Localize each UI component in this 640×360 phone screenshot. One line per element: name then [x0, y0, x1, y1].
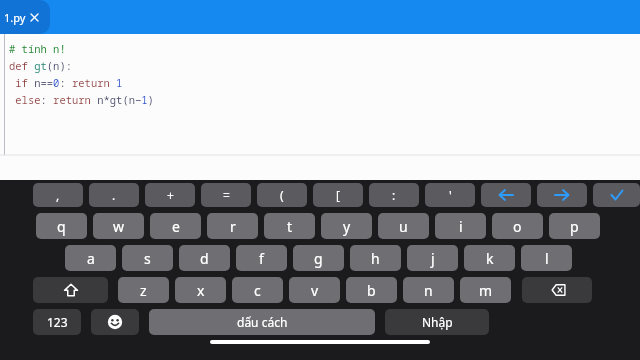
button[interactable]: Nhập	[385, 309, 489, 335]
button[interactable]: [	[313, 183, 363, 207]
staticText: p	[570, 217, 579, 236]
button[interactable]: (	[257, 183, 307, 207]
button[interactable]: j	[407, 245, 458, 271]
button[interactable]: d	[179, 245, 230, 271]
staticText: u	[399, 217, 408, 236]
staticText: f	[259, 249, 264, 268]
staticText: i	[459, 217, 463, 236]
staticText: r	[230, 217, 236, 236]
button[interactable]: o	[492, 213, 543, 239]
button[interactable]: a	[65, 245, 116, 271]
button[interactable]: v	[289, 277, 340, 303]
staticText: z	[140, 281, 147, 300]
button[interactable]: l	[521, 245, 572, 271]
button[interactable]: s	[122, 245, 173, 271]
staticText: j	[431, 249, 435, 268]
other: Close tab	[30, 13, 39, 22]
button[interactable]: n	[403, 277, 454, 303]
staticText: c	[254, 281, 261, 300]
staticText: q	[57, 217, 66, 236]
button[interactable]: e	[150, 213, 201, 239]
staticText: x	[197, 281, 205, 300]
staticText: :	[392, 187, 396, 203]
staticText: a	[87, 249, 95, 268]
staticText: Nhập	[422, 314, 453, 330]
button[interactable]: g	[293, 245, 344, 271]
button[interactable]: =	[201, 183, 251, 207]
staticText: def gt(n):	[9, 59, 72, 73]
button[interactable]: p	[549, 213, 600, 239]
staticText: dấu cách	[237, 314, 288, 330]
staticText: v	[311, 281, 319, 300]
button[interactable]: c	[232, 277, 283, 303]
staticText: g	[314, 249, 323, 268]
button[interactable]: Backspace	[522, 277, 592, 303]
staticText: y	[343, 217, 351, 236]
staticText: (	[280, 187, 284, 203]
button[interactable]: y	[321, 213, 372, 239]
button[interactable]: .	[89, 183, 139, 207]
button[interactable]: Move left	[481, 183, 531, 207]
staticText: k	[486, 249, 494, 268]
button[interactable]: u	[378, 213, 429, 239]
staticText: '	[449, 187, 452, 203]
staticText: =	[223, 187, 230, 203]
button[interactable]: Shift	[33, 277, 108, 303]
button[interactable]: x	[175, 277, 226, 303]
staticText: 123	[47, 314, 68, 330]
button[interactable]: z	[118, 277, 169, 303]
staticText: e	[172, 217, 180, 236]
staticText: if n==0: return 1	[9, 76, 123, 90]
staticText: .	[112, 187, 116, 203]
staticText: h	[371, 249, 380, 268]
button[interactable]: '	[425, 183, 475, 207]
staticText: ,	[56, 187, 60, 203]
button[interactable]: f	[236, 245, 287, 271]
staticText: t	[287, 217, 293, 236]
staticText: # tính n!	[9, 42, 66, 56]
button[interactable]: 1.py	[0, 0, 50, 34]
button[interactable]: dấu cách	[149, 309, 375, 335]
staticText: else: return n*gt(n−1)	[9, 93, 154, 107]
staticText: b	[367, 281, 376, 300]
staticText: o	[513, 217, 522, 236]
button[interactable]: w	[93, 213, 144, 239]
staticText: w	[113, 217, 125, 236]
staticText: l	[545, 249, 549, 268]
button[interactable]: Confirm	[593, 183, 640, 207]
staticText: 1.py	[4, 10, 26, 25]
button[interactable]: q	[36, 213, 87, 239]
button[interactable]: r	[207, 213, 258, 239]
button[interactable]: ,	[33, 183, 83, 207]
button[interactable]: Emoji	[91, 309, 139, 335]
button[interactable]: t	[264, 213, 315, 239]
button[interactable]: Move right	[537, 183, 587, 207]
button[interactable]: :	[369, 183, 419, 207]
staticText: +	[167, 187, 174, 203]
staticText: m	[479, 281, 493, 300]
button[interactable]: k	[464, 245, 515, 271]
button[interactable]: 123	[33, 309, 81, 335]
staticText: d	[200, 249, 209, 268]
button[interactable]: m	[460, 277, 511, 303]
button[interactable]: i	[435, 213, 486, 239]
button[interactable]: b	[346, 277, 397, 303]
staticText: [	[336, 187, 340, 203]
button[interactable]: +	[145, 183, 195, 207]
staticText: n	[424, 281, 433, 300]
button[interactable]: h	[350, 245, 401, 271]
staticText: s	[144, 249, 151, 268]
